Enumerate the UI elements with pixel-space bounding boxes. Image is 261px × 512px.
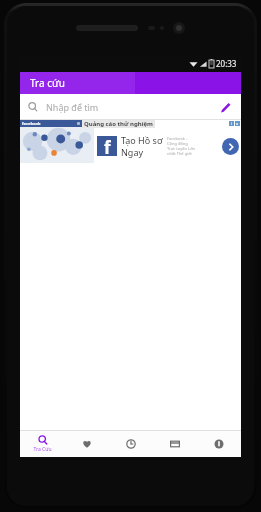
staticText: i bbox=[231, 121, 233, 126]
button[interactable]: History bbox=[109, 431, 153, 457]
staticText: Cộng đồng bbox=[167, 141, 188, 146]
button[interactable]: Info bbox=[197, 431, 241, 457]
button[interactable]: Search bbox=[20, 94, 241, 119]
button[interactable]: Go bbox=[222, 138, 239, 155]
button[interactable]: Favorites bbox=[65, 431, 109, 457]
staticText: Facebook - bbox=[167, 136, 188, 141]
button[interactable]: Tra Cứu bbox=[20, 431, 65, 457]
staticText: Trực tuyến Lớn bbox=[167, 146, 196, 151]
other: Search bbox=[28, 102, 38, 112]
staticText: Ngay bbox=[121, 146, 144, 158]
staticText: Quảng cáo thử nghiệm bbox=[84, 120, 153, 128]
staticText: nhất Thế giới bbox=[167, 151, 192, 156]
button[interactable]: Close ad bbox=[235, 121, 240, 126]
staticText: Tạo Hồ sơ bbox=[121, 134, 163, 146]
staticText: Tra cứu bbox=[30, 76, 65, 90]
button[interactable]: Edit bbox=[217, 99, 233, 115]
staticText: f bbox=[104, 136, 111, 156]
button[interactable]: facebook bbox=[20, 120, 241, 163]
button[interactable]: Cards bbox=[153, 431, 197, 457]
staticText: x bbox=[236, 121, 239, 126]
staticText: Nhập để tìm bbox=[46, 101, 99, 113]
staticText: facebook bbox=[22, 121, 41, 126]
staticText: Tra Cứu bbox=[33, 446, 52, 453]
staticText: 20:33 bbox=[216, 58, 237, 69]
